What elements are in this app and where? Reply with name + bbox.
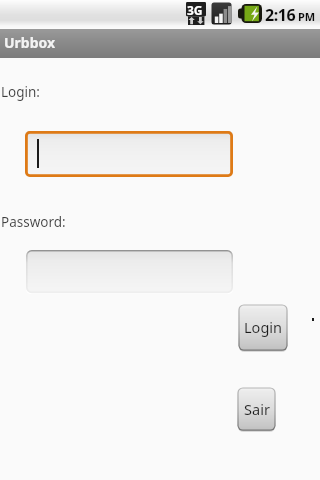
button[interactable]: Sair — [237, 387, 276, 432]
button[interactable]: Login input field — [25, 131, 233, 177]
staticText: Password: — [1, 213, 66, 231]
staticText: Login — [244, 317, 282, 337]
other: Battery charging — [238, 4, 262, 23]
staticText: PM — [298, 9, 316, 24]
staticText: 3G — [187, 2, 203, 18]
staticText: 2:16 — [265, 4, 296, 26]
staticText: Urbbox — [4, 33, 56, 52]
button[interactable]: Password input field — [26, 250, 233, 294]
staticText: Login: — [1, 83, 40, 101]
button[interactable]: Login — [238, 304, 288, 352]
other: Signal strength — [211, 2, 232, 25]
other: 3G mobile data — [186, 2, 206, 25]
button[interactable]: Urbbox — [0, 29, 320, 58]
staticText: Sair — [244, 399, 270, 419]
